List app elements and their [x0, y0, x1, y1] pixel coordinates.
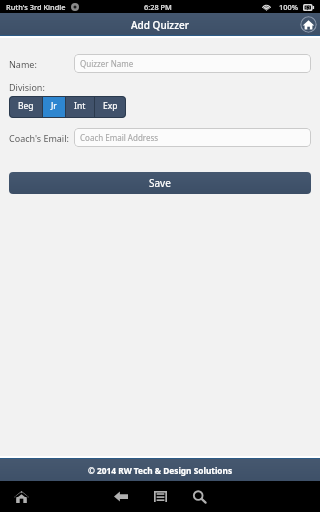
button[interactable]: Exp: [94, 96, 126, 118]
staticText: Save: [149, 176, 171, 190]
staticText: Name:: [9, 58, 37, 70]
staticText: Coach's Email:: [9, 132, 69, 144]
staticText: Exp: [103, 100, 118, 112]
button[interactable]: Search: [186, 485, 212, 508]
button[interactable]: Coach Email Address: [74, 128, 311, 147]
staticText: Jr: [51, 100, 57, 112]
button[interactable]: Int: [65, 96, 94, 118]
button[interactable]: Menu: [147, 485, 173, 508]
button[interactable]: Jr: [42, 96, 65, 118]
staticText: © 2014 RW Tech & Design Solutions: [88, 465, 233, 476]
button[interactable]: Home: [300, 16, 317, 33]
button[interactable]: Back: [108, 485, 134, 508]
staticText: 6:28 PM: [144, 2, 172, 12]
staticText: Beg: [18, 100, 34, 112]
button[interactable]: Beg: [9, 96, 42, 118]
staticText: Ruth's 3rd Kindle: [6, 2, 66, 12]
staticText: Quizzer Name: [80, 58, 134, 69]
staticText: Division:: [9, 81, 45, 93]
staticText: Add Quizzer: [131, 18, 189, 32]
button[interactable]: Quizzer Name: [74, 54, 311, 73]
button[interactable]: Save: [9, 172, 311, 194]
staticText: 100%: [279, 2, 298, 12]
staticText: Int: [74, 100, 86, 112]
button[interactable]: Home: [7, 485, 36, 508]
staticText: Coach Email Address: [80, 132, 159, 143]
